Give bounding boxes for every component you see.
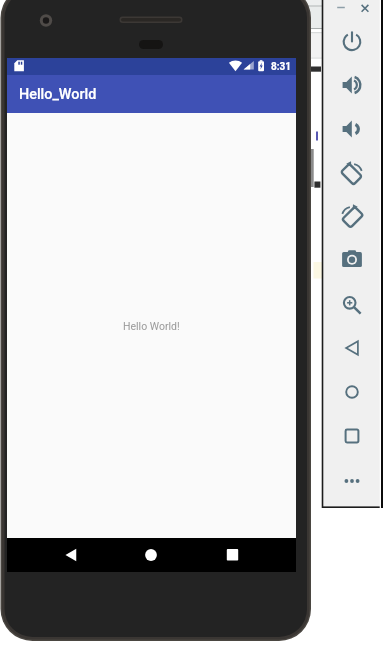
button[interactable]: Close [357, 0, 373, 16]
button[interactable]: Hello_World [7, 75, 296, 113]
button[interactable]: Home [337, 377, 367, 407]
staticText: 8:31 [271, 61, 292, 73]
button[interactable]: Home [133, 539, 169, 571]
button[interactable]: More [337, 466, 367, 496]
button[interactable]: Minimize [333, 0, 349, 16]
button[interactable]: Power [337, 26, 367, 56]
staticText: Hello_World [19, 86, 97, 103]
button[interactable]: Rotate right [337, 158, 367, 188]
staticText: Hello World! [123, 320, 180, 332]
button[interactable]: Screenshot [337, 245, 367, 275]
button[interactable]: Volume down [337, 114, 367, 144]
button[interactable]: Back [52, 539, 88, 571]
button[interactable]: Recents [214, 539, 250, 571]
button[interactable]: Zoom [337, 289, 367, 319]
button[interactable]: Overview [337, 421, 367, 451]
button[interactable]: Volume up [337, 70, 367, 100]
button[interactable]: Back [337, 333, 367, 363]
button[interactable]: Rotate left [337, 201, 367, 231]
